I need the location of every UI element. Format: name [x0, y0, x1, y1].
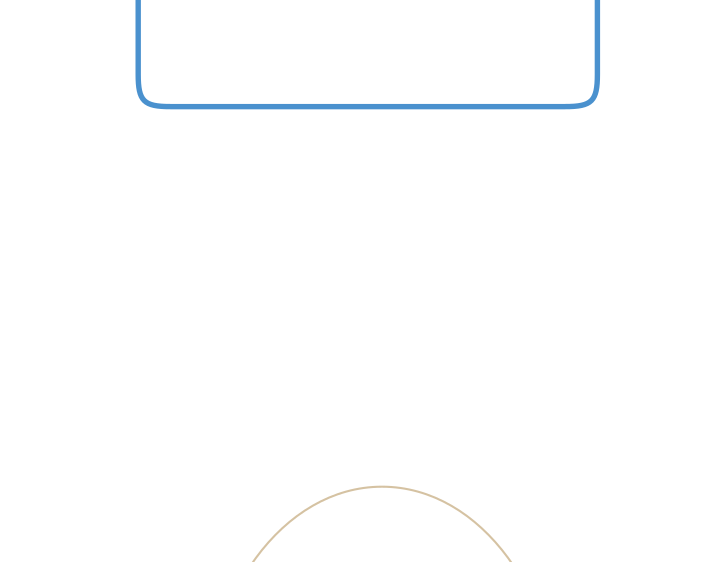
button[interactable]: Card: [138, 0, 597, 107]
